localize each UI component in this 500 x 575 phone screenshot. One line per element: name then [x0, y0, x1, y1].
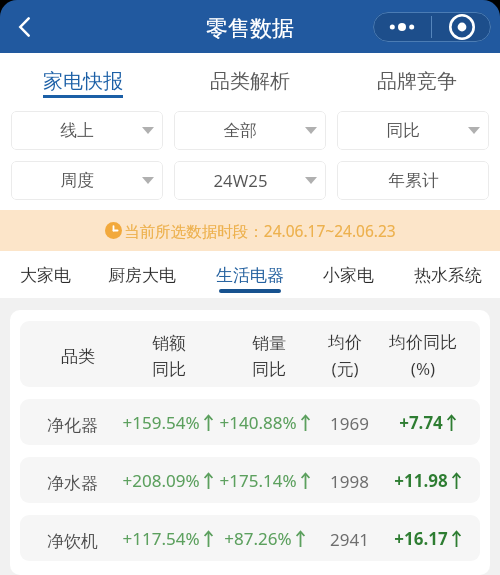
button[interactable]: 品类解析: [166, 53, 333, 100]
staticText: 厨房大电: [108, 265, 176, 286]
button[interactable]: 小家电: [300, 251, 400, 298]
staticText: 1998: [330, 470, 369, 493]
staticText: 大家电: [20, 265, 71, 286]
staticText: 周度: [60, 170, 94, 191]
staticText: 全部: [223, 120, 257, 141]
staticText: 净水器: [47, 473, 98, 494]
button[interactable]: 24W25: [174, 161, 326, 200]
staticText: 净化器: [47, 415, 98, 436]
staticText: 生活电器: [216, 265, 284, 286]
staticText: 零售数据: [206, 15, 294, 43]
staticText: 均价同比 (%): [372, 332, 474, 380]
staticText: 1969: [330, 412, 369, 435]
staticText: 品类: [25, 346, 131, 367]
staticText: 家电快报: [43, 69, 123, 94]
button[interactable]: 线上: [11, 111, 163, 150]
staticText: 销量 同比: [213, 333, 325, 380]
staticText: 品牌竞争: [377, 69, 457, 94]
staticText: +16.17: [394, 527, 448, 550]
button[interactable]: More options: [373, 12, 431, 42]
button[interactable]: 净水器: [20, 457, 480, 503]
staticText: 同比: [386, 120, 420, 141]
staticText: 线上: [60, 120, 94, 141]
button[interactable]: Back: [3, 6, 45, 48]
button[interactable]: 净化器: [20, 399, 480, 445]
staticText: +175.14%: [219, 469, 297, 492]
staticText: +208.09%: [122, 469, 200, 492]
button[interactable]: 家电快报: [0, 53, 166, 100]
staticText: +7.74: [399, 411, 443, 434]
button[interactable]: 全部: [174, 111, 326, 150]
button[interactable]: 同比: [337, 111, 489, 150]
button[interactable]: 净饮机: [20, 515, 480, 561]
staticText: 2941: [330, 528, 369, 551]
button[interactable]: 热水系统: [400, 251, 500, 298]
button[interactable]: 厨房大电: [100, 251, 200, 298]
button[interactable]: 年累计: [337, 161, 489, 200]
staticText: +87.26%: [224, 527, 292, 550]
staticText: 热水系统: [414, 265, 482, 286]
staticText: 当前所选数据时段：24.06.17~24.06.23: [124, 220, 396, 241]
staticText: +117.54%: [122, 527, 200, 550]
staticText: 均价 (元): [317, 332, 373, 380]
button[interactable]: 大家电: [0, 251, 100, 298]
button[interactable]: 品牌竞争: [333, 53, 500, 100]
staticText: 销额 同比: [127, 333, 211, 380]
staticText: +159.54%: [122, 411, 200, 434]
staticText: +11.98: [394, 469, 448, 492]
button[interactable]: 生活电器: [200, 251, 300, 298]
button[interactable]: 周度: [11, 161, 163, 200]
staticText: 品类解析: [210, 69, 290, 94]
staticText: 24W25: [213, 169, 268, 192]
staticText: +140.88%: [219, 411, 297, 434]
staticText: 净饮机: [47, 531, 98, 552]
button[interactable]: Close mini program: [432, 12, 491, 42]
staticText: 小家电: [323, 265, 374, 286]
staticText: 年累计: [388, 170, 439, 191]
